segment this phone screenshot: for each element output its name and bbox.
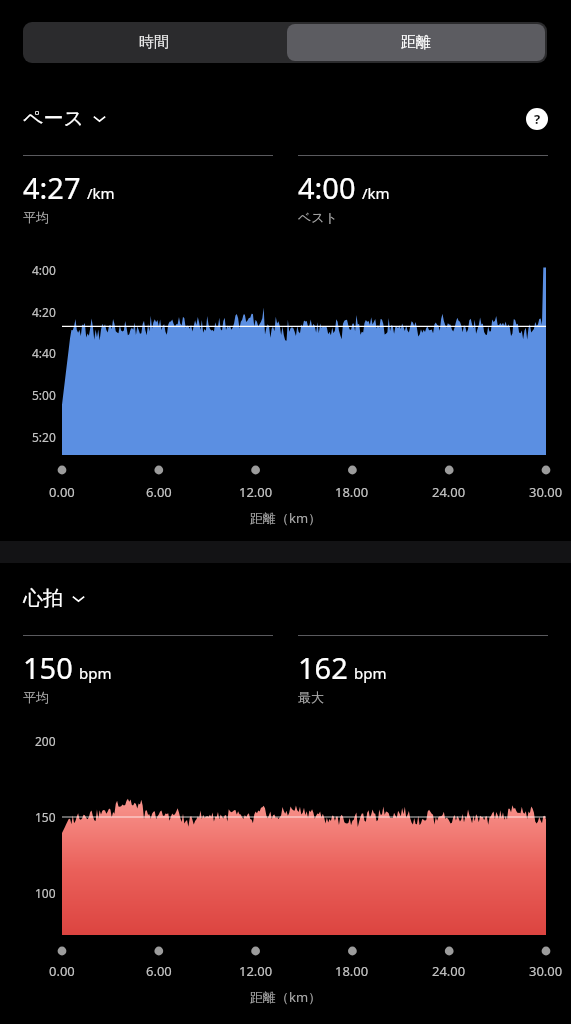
staticText: 4:20 <box>32 304 56 320</box>
staticText: 平均 <box>23 689 49 705</box>
staticText: 5:20 <box>32 429 56 445</box>
staticText: bpm <box>79 663 112 683</box>
staticText: 162 <box>298 648 348 687</box>
staticText: 6.00 <box>146 483 172 501</box>
button[interactable]: 4:00 <box>298 155 548 225</box>
staticText: 4:00 <box>298 168 356 207</box>
button[interactable]: 162 <box>298 635 548 705</box>
staticText: /km <box>87 183 115 203</box>
button[interactable]: 4:27 <box>23 155 273 225</box>
button[interactable]: 距離 <box>287 24 545 61</box>
staticText: 最大 <box>298 689 324 705</box>
button[interactable]: 150 <box>23 635 273 705</box>
staticText: 4:40 <box>32 345 56 361</box>
staticText: 18.00 <box>335 483 369 501</box>
staticText: 150 <box>35 809 56 825</box>
button[interactable]: Help <box>525 107 549 131</box>
staticText: 時間 <box>139 33 169 52</box>
staticText: 24.00 <box>432 962 466 980</box>
staticText: 12.00 <box>239 962 273 980</box>
staticText: 4:00 <box>32 262 56 278</box>
staticText: 18.00 <box>335 962 369 980</box>
staticText: 6.00 <box>146 962 172 980</box>
staticText: 5:00 <box>32 387 56 403</box>
staticText: 12.00 <box>239 483 273 501</box>
staticText: 距離 <box>401 33 431 52</box>
staticText: 0.00 <box>49 483 75 501</box>
staticText: 平均 <box>23 209 49 225</box>
button[interactable]: 心拍 <box>23 586 86 611</box>
staticText: 100 <box>35 885 56 901</box>
staticText: ペース <box>23 106 84 131</box>
staticText: 距離（km） <box>0 509 571 527</box>
staticText: 0.00 <box>49 962 75 980</box>
staticText: bpm <box>354 663 387 683</box>
staticText: 30.00 <box>529 962 563 980</box>
staticText: 24.00 <box>432 483 466 501</box>
staticText: 150 <box>23 648 73 687</box>
staticText: /km <box>362 183 390 203</box>
staticText: ベスト <box>298 209 338 225</box>
staticText: 心拍 <box>23 586 63 611</box>
staticText: 距離（km） <box>0 988 571 1006</box>
button[interactable]: 時間 <box>23 22 285 63</box>
staticText: 200 <box>35 733 56 749</box>
staticText: ? <box>534 110 541 128</box>
staticText: 30.00 <box>529 483 563 501</box>
staticText: 4:27 <box>23 168 81 207</box>
button[interactable]: ペース <box>23 106 107 131</box>
